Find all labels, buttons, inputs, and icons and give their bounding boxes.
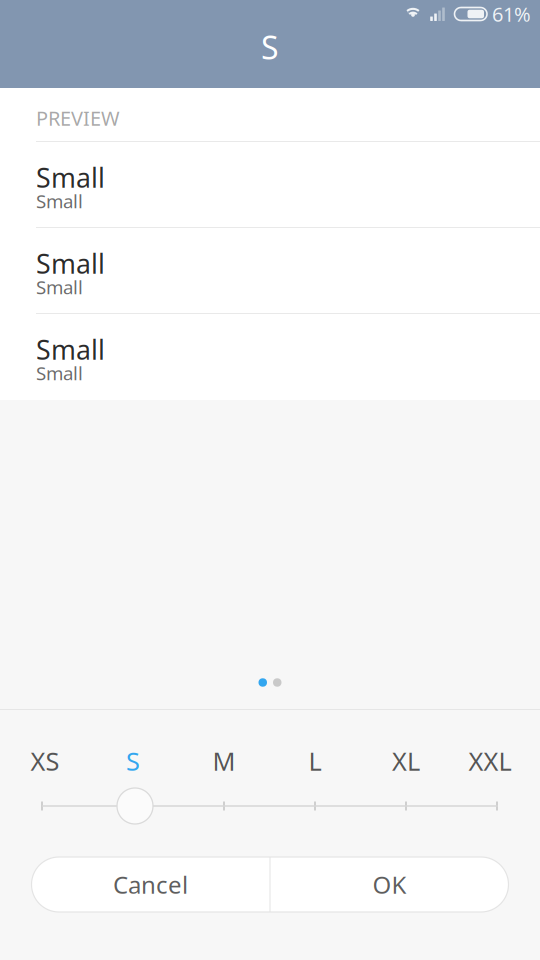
button[interactable]: L (280, 746, 350, 776)
staticText: XL (392, 744, 420, 778)
button[interactable]: XL (371, 746, 441, 776)
button[interactable]: Small (0, 142, 540, 227)
staticText: S (126, 744, 140, 778)
button[interactable]: Small (0, 228, 540, 313)
staticText: Small (36, 246, 105, 281)
staticText: OK (372, 869, 406, 900)
staticText: XXL (468, 744, 511, 778)
button[interactable]: M (189, 746, 259, 776)
staticText: 61% (492, 1, 531, 27)
button[interactable]: S (98, 746, 168, 776)
button[interactable]: Small (0, 314, 540, 399)
staticText: S (261, 26, 279, 68)
staticText: Small (36, 160, 105, 195)
button[interactable]: OK (270, 857, 508, 912)
staticText: Small (36, 189, 83, 213)
staticText: Small (36, 361, 83, 385)
staticText: L (308, 744, 321, 778)
button[interactable]: XS (10, 746, 80, 776)
staticText: Cancel (113, 869, 188, 900)
staticText: M (212, 744, 235, 778)
button[interactable]: XXL (455, 746, 525, 776)
staticText: Small (36, 275, 83, 299)
staticText: PREVIEW (36, 105, 120, 131)
staticText: Small (36, 332, 105, 367)
button[interactable]: Cancel (31, 857, 269, 912)
staticText: XS (30, 744, 59, 778)
